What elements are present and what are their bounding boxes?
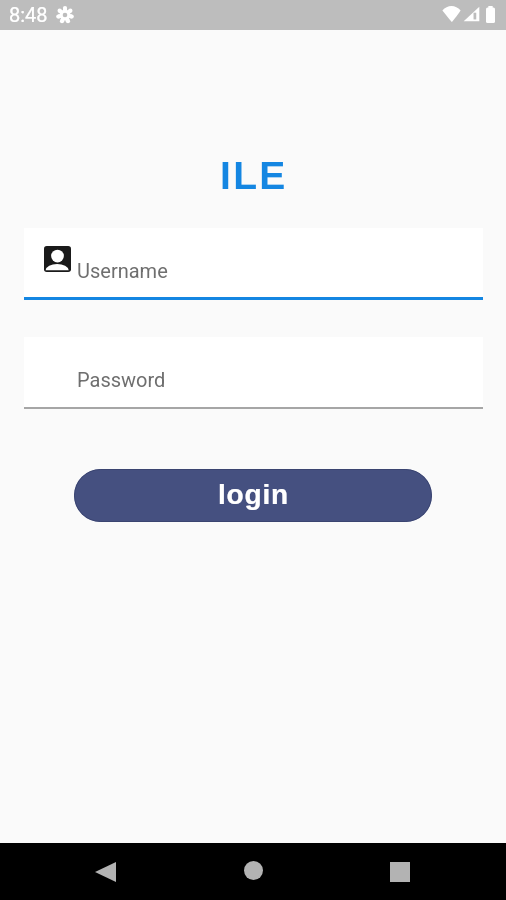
staticText: Password [77, 368, 166, 391]
staticText: 8:48 [9, 3, 48, 26]
button[interactable]: Username [24, 228, 483, 300]
button[interactable]: login [74, 469, 432, 522]
button[interactable]: Password [24, 337, 483, 409]
staticText: ILE [220, 154, 288, 198]
button[interactable]: Back [81, 847, 130, 896]
button[interactable]: Home [229, 846, 278, 895]
button[interactable]: Recent apps [375, 847, 424, 896]
staticText: login [218, 479, 289, 510]
staticText: Username [77, 259, 168, 282]
